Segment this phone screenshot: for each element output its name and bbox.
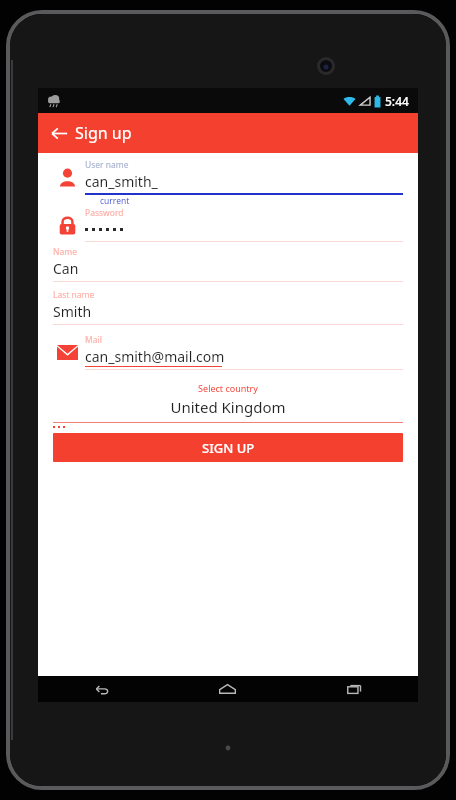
- staticText: Sign up: [75, 122, 132, 144]
- staticText: Smith: [53, 302, 92, 321]
- staticText: SIGN UP: [202, 439, 255, 457]
- staticText: User name: [85, 159, 129, 171]
- button[interactable]: Back: [46, 120, 72, 146]
- button[interactable]: SIGN UP: [53, 433, 403, 462]
- button[interactable]: Password: [38, 207, 418, 242]
- staticText: Name: [53, 246, 77, 258]
- staticText: Last name: [53, 289, 95, 301]
- button[interactable]: User name: [38, 159, 418, 207]
- staticText: current: [100, 195, 130, 207]
- staticText: United Kingdom: [53, 397, 403, 417]
- button[interactable]: Back: [38, 676, 164, 702]
- staticText: can_smith@mail.com: [85, 347, 225, 366]
- button[interactable]: Home: [164, 676, 291, 702]
- button[interactable]: Last name: [53, 289, 403, 325]
- staticText: Can: [53, 259, 79, 278]
- button[interactable]: Name: [53, 246, 403, 282]
- button[interactable]: Mail: [38, 334, 418, 370]
- staticText: 5:44: [385, 93, 409, 109]
- button[interactable]: Recent apps: [291, 676, 418, 702]
- button[interactable]: Select country: [53, 382, 403, 423]
- staticText: can_smith_: [85, 172, 158, 191]
- staticText: Select country: [53, 382, 403, 394]
- staticText: Mail: [85, 334, 102, 346]
- staticText: Password: [85, 207, 124, 219]
